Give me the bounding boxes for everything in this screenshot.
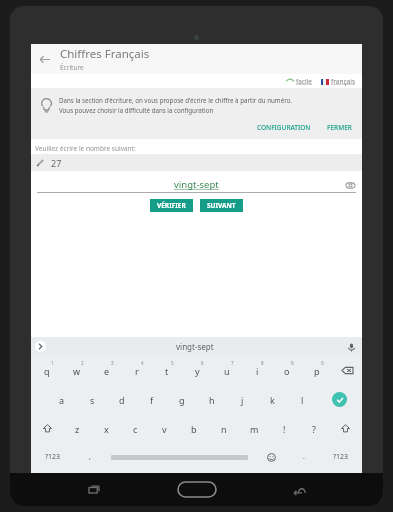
button[interactable]: VÉRIFIER (150, 199, 193, 212)
button[interactable]: a (47, 385, 77, 414)
button[interactable]: Voice input (344, 340, 358, 354)
button[interactable]: s (77, 385, 107, 414)
button[interactable]: y (182, 356, 212, 385)
staticText: vingt-sept (174, 178, 219, 191)
staticText: Vous pouvez choisir la difficulté dans l… (59, 106, 214, 114)
staticText: h (209, 394, 215, 406)
button[interactable]: ?123 (31, 443, 75, 471)
staticText: 3 (111, 360, 114, 366)
button[interactable]: Space (105, 443, 254, 471)
button[interactable]: Emoji (254, 443, 289, 471)
button[interactable]: e (92, 356, 122, 385)
button[interactable]: FERMER (323, 121, 356, 134)
staticText: , (89, 452, 91, 462)
staticText: 7 (231, 360, 234, 366)
staticText: Chiffres Français (60, 46, 150, 62)
button[interactable]: Enter (317, 385, 362, 414)
staticText: c (133, 423, 138, 435)
staticText: d (119, 394, 125, 406)
button[interactable]: Show answer (343, 178, 357, 192)
button[interactable]: c (121, 414, 150, 443)
button[interactable]: n (209, 414, 239, 443)
staticText: g (179, 394, 185, 406)
staticText: ! (283, 423, 286, 435)
staticText: x (104, 423, 109, 435)
staticText: j (241, 394, 244, 406)
button[interactable]: Shift (31, 414, 63, 443)
button[interactable]: b (179, 414, 209, 443)
button[interactable]: r (122, 356, 152, 385)
button[interactable]: , (75, 443, 105, 471)
button[interactable]: SUIVANT (200, 199, 243, 212)
button[interactable]: ! (269, 414, 299, 443)
button[interactable]: f (137, 385, 167, 414)
staticText: 1 (51, 360, 54, 366)
staticText: w (73, 365, 81, 377)
staticText: v (162, 423, 167, 435)
button[interactable]: Expand toolbar (35, 341, 46, 352)
staticText: 5 (171, 360, 174, 366)
staticText: b (191, 423, 197, 435)
button[interactable]: Backspace (332, 356, 362, 385)
button[interactable]: 27 (31, 154, 362, 171)
staticText: VÉRIFIER (157, 201, 186, 210)
button[interactable]: o (272, 356, 302, 385)
button[interactable]: x (92, 414, 121, 443)
button[interactable]: w (62, 356, 92, 385)
button[interactable]: g (167, 385, 197, 414)
button[interactable]: t (152, 356, 182, 385)
staticText: français (331, 77, 356, 86)
button[interactable]: ? (299, 414, 329, 443)
staticText: Veuillez écrire le nombre suivant: (35, 144, 136, 153)
button[interactable]: Back (31, 46, 57, 72)
button[interactable]: Back (286, 477, 312, 503)
staticText: z (75, 423, 80, 435)
button[interactable]: m (239, 414, 269, 443)
staticText: vingt-sept (176, 341, 214, 352)
button[interactable]: CONFIGURATION (253, 121, 315, 134)
button[interactable]: k (257, 385, 287, 414)
staticText: CONFIGURATION (257, 123, 311, 132)
staticText: s (90, 394, 95, 406)
staticText: m (250, 423, 259, 435)
button[interactable]: v (150, 414, 179, 443)
button[interactable]: d (107, 385, 137, 414)
staticText: q (44, 365, 50, 377)
staticText: Écriture (60, 63, 84, 72)
staticText: 9 (291, 360, 294, 366)
staticText: 4 (141, 360, 144, 366)
button[interactable]: vingt-sept (46, 341, 344, 352)
staticText: t (165, 365, 169, 377)
staticText: FERMER (327, 123, 352, 132)
staticText: ?123 (45, 452, 61, 462)
staticText: p (314, 365, 320, 377)
staticText: y (195, 365, 200, 377)
button[interactable]: h (197, 385, 227, 414)
button[interactable]: français (321, 77, 356, 86)
staticText: 8 (261, 360, 264, 366)
staticText: n (221, 423, 227, 435)
staticText: f (150, 394, 154, 406)
button[interactable]: j (227, 385, 257, 414)
button[interactable]: Recents (81, 477, 107, 503)
staticText: a (59, 394, 65, 406)
button[interactable]: facile (286, 77, 313, 86)
button[interactable]: Shift (329, 414, 362, 443)
staticText: 0 (321, 360, 324, 366)
button[interactable]: u (212, 356, 242, 385)
staticText: facile (296, 77, 313, 86)
staticText: ? (312, 423, 316, 435)
button[interactable]: ?123 (319, 443, 362, 471)
button[interactable]: i (242, 356, 272, 385)
staticText: 2 (81, 360, 84, 366)
button[interactable]: p (302, 356, 332, 385)
staticText: r (135, 365, 139, 377)
staticText: ?123 (333, 452, 349, 462)
button[interactable]: q (31, 356, 62, 385)
button[interactable]: Home (178, 482, 216, 497)
staticText: u (224, 365, 230, 377)
button[interactable]: l (287, 385, 317, 414)
staticText: i (256, 365, 259, 377)
button[interactable]: z (63, 414, 92, 443)
